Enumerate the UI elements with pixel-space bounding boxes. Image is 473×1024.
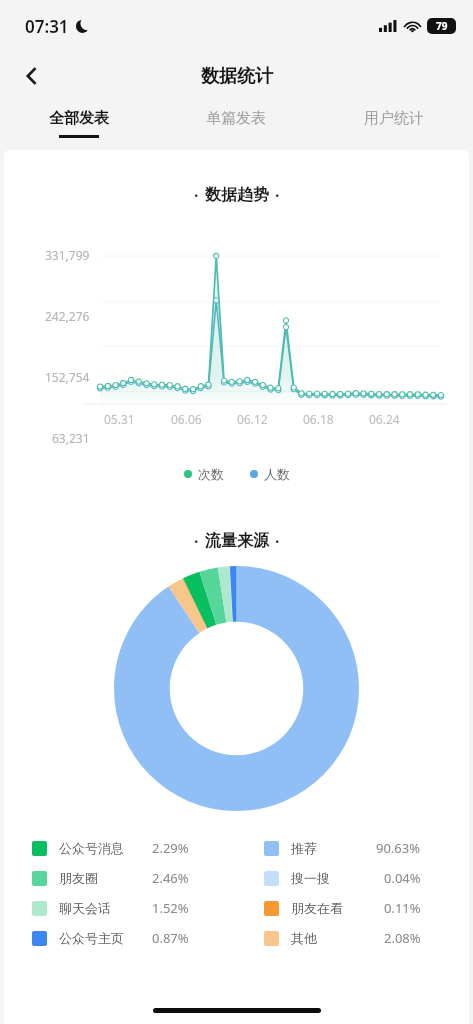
staticText: 1.52% [152, 899, 189, 917]
staticText: 朋友圈 [59, 870, 98, 886]
staticText: · [275, 184, 280, 206]
staticText: 公众号消息 [59, 840, 124, 856]
button[interactable]: 其他 [236, 923, 469, 953]
button[interactable]: 聊天会话 [4, 893, 236, 923]
staticText: 0.11% [384, 899, 421, 917]
button[interactable]: 朋友在看 [236, 893, 469, 923]
button[interactable]: 用户统计 [315, 100, 473, 146]
staticText: · [194, 184, 199, 206]
staticText: 单篇发表 [206, 109, 266, 128]
staticText: 2.08% [384, 929, 421, 947]
staticText: 0.04% [384, 869, 421, 887]
staticText: 0.87% [152, 929, 189, 947]
staticText: 152,754 [45, 369, 90, 385]
staticText: 人数 [264, 466, 290, 482]
staticText: 63,231 [52, 430, 90, 446]
button[interactable]: 全部发表 [0, 100, 157, 146]
staticText: 79 [436, 19, 448, 33]
staticText: · [275, 530, 280, 552]
staticText: 06.12 [237, 411, 268, 427]
staticText: 聊天会话 [59, 900, 111, 916]
staticText: 2.29% [152, 839, 189, 857]
staticText: 搜一搜 [291, 870, 330, 886]
staticText: 数据趋势 [205, 185, 269, 205]
staticText: 用户统计 [364, 109, 424, 128]
staticText: 06.24 [369, 411, 400, 427]
button[interactable]: 推荐 [236, 833, 469, 863]
staticText: 242,276 [45, 308, 90, 324]
button[interactable]: 公众号主页 [4, 923, 236, 953]
staticText: 数据统计 [201, 65, 273, 88]
staticText: 朋友在看 [291, 900, 343, 916]
button[interactable]: 单篇发表 [157, 100, 315, 146]
button[interactable]: 朋友圈 [4, 863, 236, 893]
staticText: 331,799 [45, 247, 90, 263]
staticText: 06.18 [303, 411, 334, 427]
staticText: 05.31 [104, 411, 135, 427]
staticText: 流量来源 [205, 531, 269, 551]
staticText: 其他 [291, 930, 317, 946]
button[interactable]: 搜一搜 [236, 863, 469, 893]
staticText: 06.06 [171, 411, 202, 427]
staticText: 次数 [198, 466, 224, 482]
staticText: 90.63% [376, 839, 421, 857]
staticText: 07:31 [25, 15, 69, 38]
button[interactable]: 公众号消息 [4, 833, 236, 863]
staticText: 推荐 [291, 840, 317, 856]
button[interactable]: Back [10, 54, 54, 98]
staticText: 公众号主页 [59, 930, 124, 946]
staticText: · [194, 530, 199, 552]
staticText: 全部发表 [49, 109, 109, 128]
staticText: 2.46% [152, 869, 189, 887]
